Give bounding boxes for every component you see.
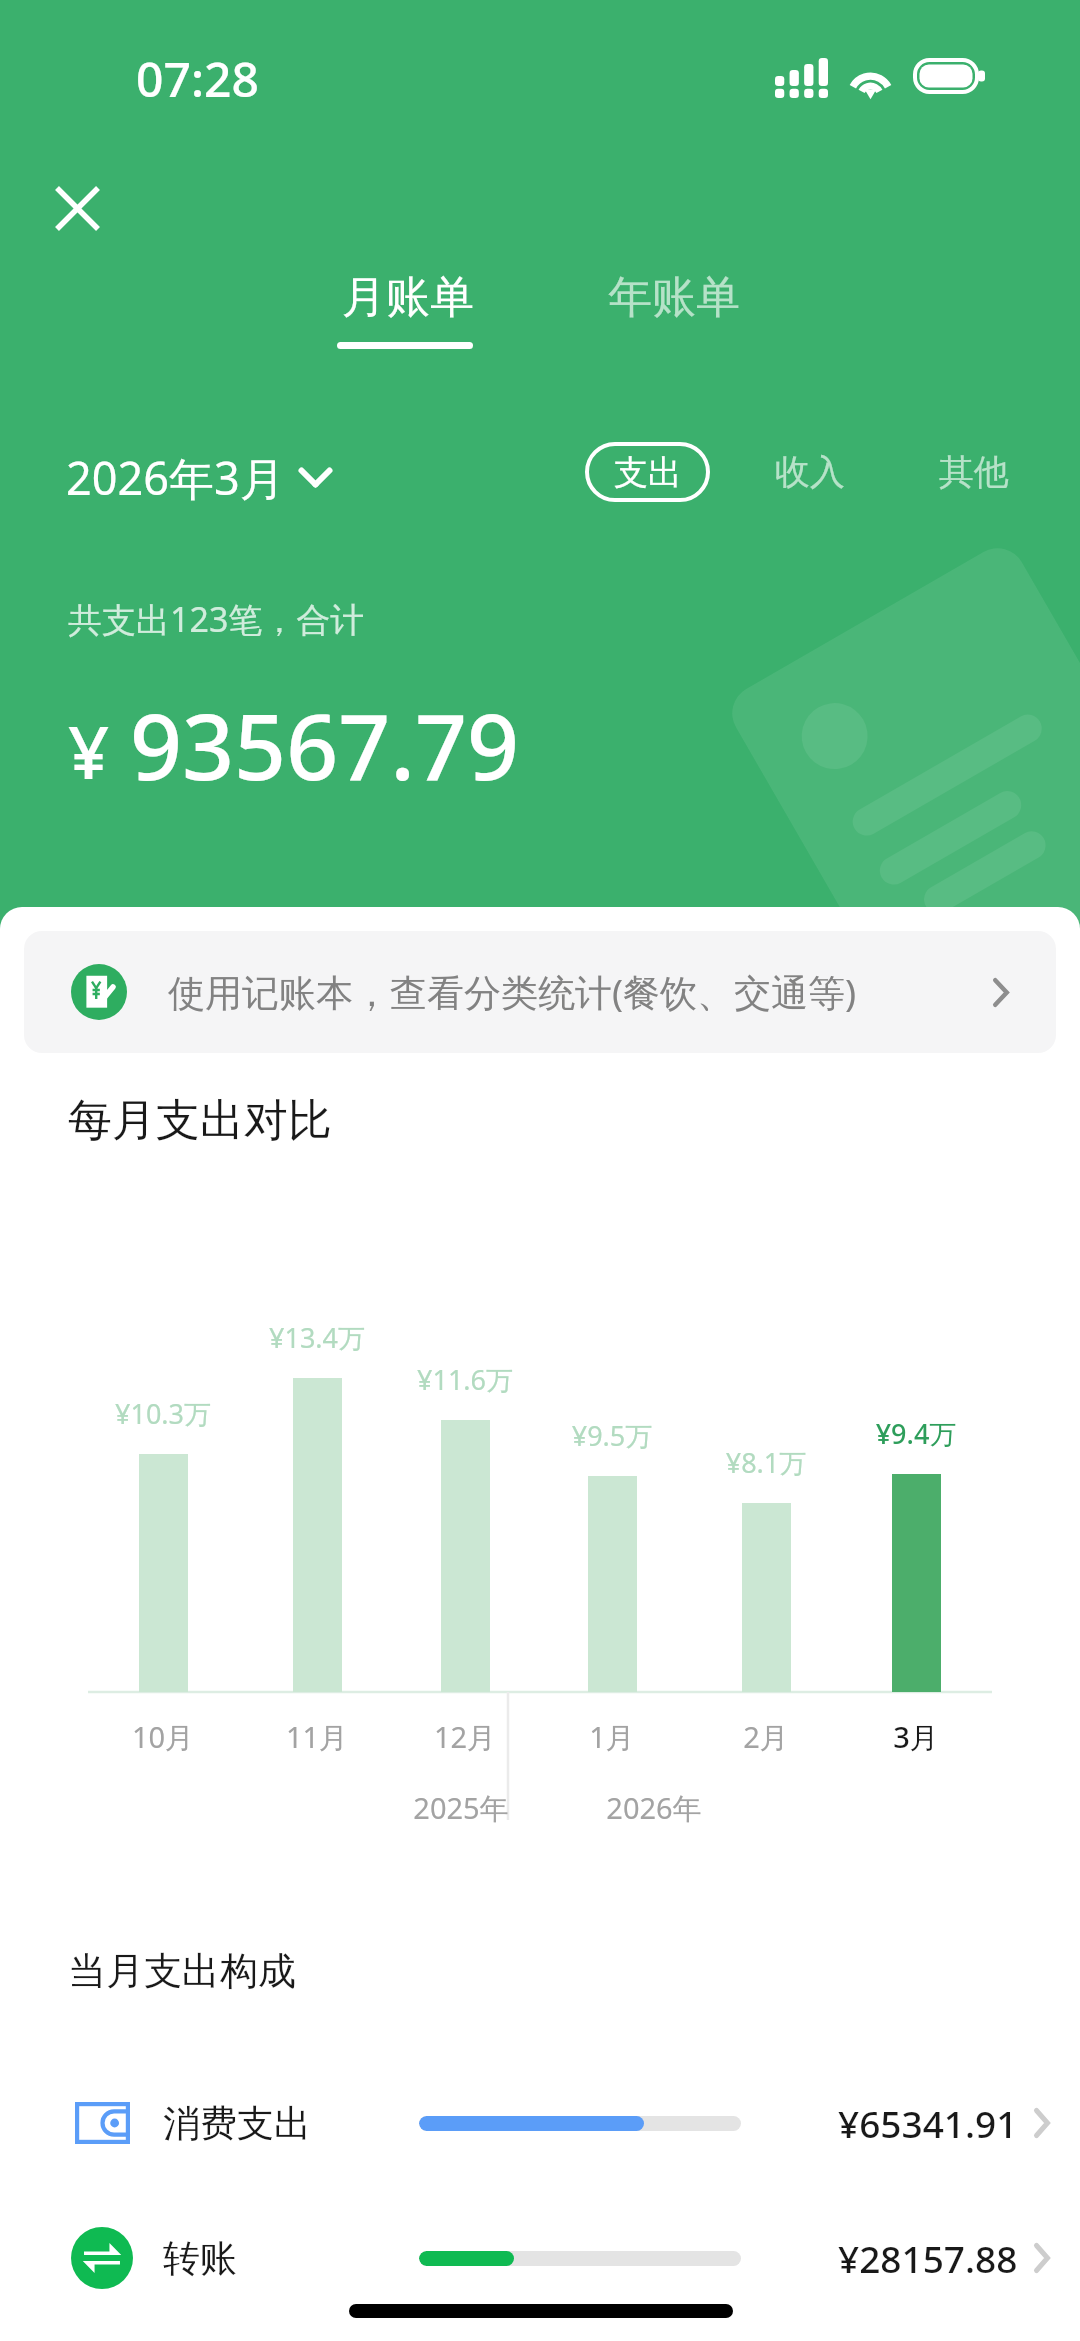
button[interactable]: 支出 [585,442,710,502]
staticText: 10月 [63,1717,263,1757]
staticText: 2026年3月 [66,447,285,508]
staticText: 每月支出对比 [68,1093,332,1148]
staticText: ¥ [68,702,110,800]
staticText: ¥9.5万 [512,1417,712,1454]
staticText: ¥11.6万 [365,1361,565,1398]
staticText: 当月支出构成 [68,1947,296,1995]
staticText: 使用记账本，查看分类统计(餐饮、交通等) [168,966,857,1017]
staticText: 12月 [365,1717,565,1757]
button[interactable]: 收入 [765,442,855,502]
staticText: ¥8.1万 [666,1444,866,1481]
button[interactable]: 月账单 [322,260,494,335]
staticText: 其他 [939,450,1009,494]
staticText: 2月 [666,1717,866,1757]
staticText: 年账单 [608,270,740,325]
staticText: 07:28 [136,46,259,111]
staticText: 2026年 [554,1788,754,1828]
button[interactable]: 其他 [929,442,1019,502]
staticText: 3月 [816,1717,1016,1757]
staticText: 共支出123笔，合计 [68,596,365,642]
staticText: 支出 [614,451,682,494]
staticText: ¥28157.88 [838,2233,1018,2283]
staticText: 93567.79 [130,683,520,807]
button[interactable]: 转账 [0,2203,1080,2313]
staticText: 11月 [217,1717,417,1757]
button[interactable]: 消费支出 [0,2068,1080,2178]
staticText: ¥65341.91 [838,2098,1018,2148]
staticText: ¥9.4万 [816,1415,1016,1452]
button[interactable]: 2026年3月 [52,437,346,518]
staticText: 2025年 [361,1788,561,1828]
button[interactable]: Close [37,168,117,248]
staticText: 1月 [512,1717,712,1757]
staticText: ¥13.4万 [217,1319,417,1356]
button[interactable]: 年账单 [588,260,760,335]
staticText: 消费支出 [163,2100,311,2147]
staticText: 收入 [775,450,845,494]
staticText: 转账 [163,2235,237,2282]
button[interactable]: 使用记账本，查看分类统计(餐饮、交通等) [24,931,1056,1053]
staticText: 月账单 [342,270,474,325]
staticText: ¥10.3万 [63,1395,263,1432]
